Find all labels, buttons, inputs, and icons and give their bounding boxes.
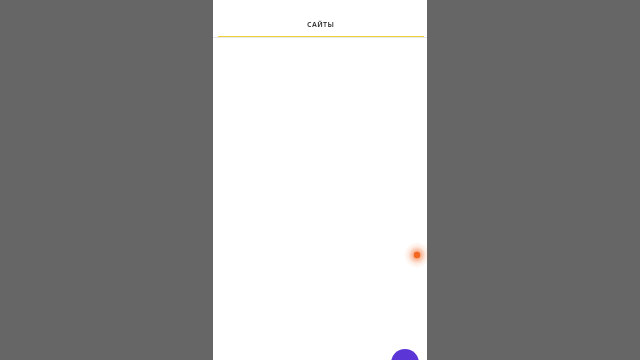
button[interactable]: САЙТЫ [218, 16, 424, 37]
staticText: САЙТЫ [307, 20, 335, 30]
